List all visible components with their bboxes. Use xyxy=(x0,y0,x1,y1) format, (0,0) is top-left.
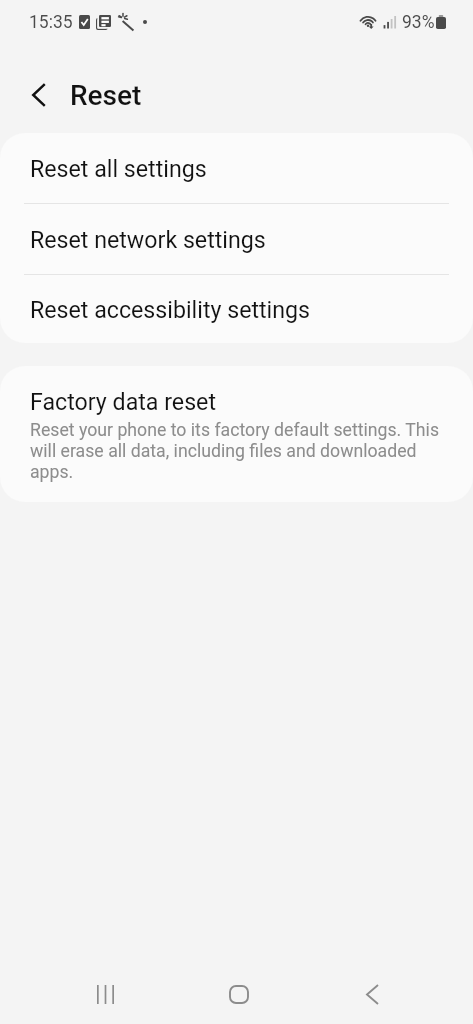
button[interactable]: Reset network settings xyxy=(0,204,473,274)
staticText: Reset all settings xyxy=(30,155,207,182)
button[interactable]: Home xyxy=(209,964,269,1024)
button[interactable]: Back xyxy=(342,964,402,1024)
staticText: Reset accessibility settings xyxy=(30,296,311,323)
button[interactable]: Reset accessibility settings xyxy=(0,275,473,343)
button[interactable]: Reset all settings xyxy=(0,133,473,203)
button[interactable]: Recent apps xyxy=(75,964,135,1024)
button[interactable]: Factory data reset xyxy=(0,366,473,502)
button[interactable]: Navigate up xyxy=(17,73,60,116)
staticText: Reset network settings xyxy=(30,226,266,253)
staticText: 15:35 xyxy=(29,12,73,33)
staticText: Factory data reset xyxy=(30,388,216,415)
staticText: Reset xyxy=(70,79,142,109)
staticText: 93% xyxy=(402,12,435,33)
staticText: Reset your phone to its factory default … xyxy=(30,420,449,483)
